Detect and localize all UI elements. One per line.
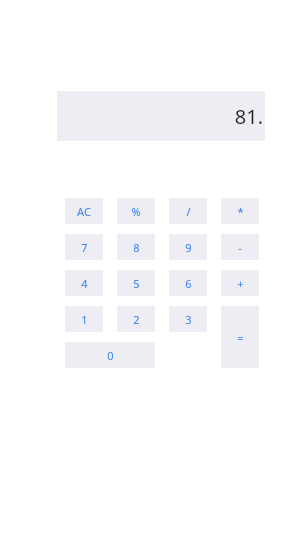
staticText: 3 [185, 312, 192, 327]
button[interactable]: 81. [57, 91, 265, 141]
staticText: % [131, 204, 141, 219]
button[interactable]: = [221, 306, 259, 368]
button[interactable]: 8 [117, 234, 155, 260]
staticText: 8 [133, 240, 140, 255]
staticText: / [186, 204, 191, 219]
staticText: * [237, 204, 244, 219]
button[interactable]: 2 [117, 306, 155, 332]
staticText: 81. [234, 103, 263, 130]
button[interactable]: AC [65, 198, 103, 224]
button[interactable]: 5 [117, 270, 155, 296]
staticText: 9 [185, 240, 192, 255]
button[interactable]: 3 [169, 306, 207, 332]
staticText: 4 [81, 276, 88, 291]
button[interactable]: / [169, 198, 207, 224]
staticText: 1 [81, 312, 88, 327]
staticText: = [237, 330, 244, 345]
button[interactable]: 0 [65, 342, 155, 368]
button[interactable]: - [221, 234, 259, 260]
staticText: 5 [133, 276, 140, 291]
button[interactable]: 9 [169, 234, 207, 260]
staticText: 0 [107, 348, 114, 363]
button[interactable]: 4 [65, 270, 103, 296]
button[interactable]: + [221, 270, 259, 296]
button[interactable]: 6 [169, 270, 207, 296]
button[interactable]: 7 [65, 234, 103, 260]
staticText: AC [77, 204, 91, 219]
button[interactable]: * [221, 198, 259, 224]
staticText: - [238, 240, 242, 255]
staticText: 7 [81, 240, 88, 255]
staticText: 6 [185, 276, 192, 291]
staticText: 2 [133, 312, 140, 327]
button[interactable]: 1 [65, 306, 103, 332]
button[interactable]: % [117, 198, 155, 224]
staticText: + [237, 276, 244, 291]
